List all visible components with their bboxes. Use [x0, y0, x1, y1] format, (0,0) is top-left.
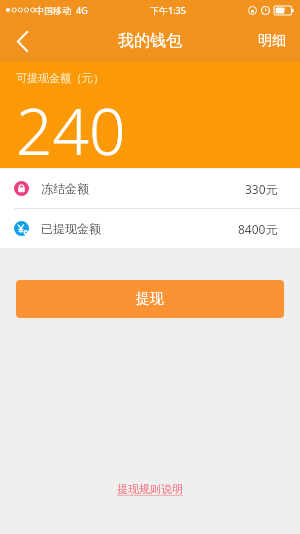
staticText: 明细 [258, 32, 286, 50]
staticText: 240 [16, 87, 126, 168]
staticText: 提现规则说明 [117, 482, 183, 496]
staticText: 下午1:35 [150, 4, 186, 16]
staticText: 可提现金额（元） [16, 71, 104, 85]
staticText: 已提现金额 [41, 221, 101, 236]
staticText: 提现 [136, 290, 164, 308]
button[interactable]: 已提现金额 [0, 209, 300, 248]
staticText: 330元 [245, 181, 278, 197]
button[interactable]: 提现规则说明 [107, 476, 193, 502]
button[interactable]: 明细 [244, 22, 300, 60]
button[interactable]: 冻结金额 [0, 169, 300, 208]
staticText: 中国移动 [35, 5, 71, 16]
button[interactable]: Back [0, 20, 44, 62]
staticText: 4G [76, 4, 88, 16]
button[interactable]: 提现 [16, 280, 284, 318]
staticText: 我的钱包 [118, 31, 182, 51]
staticText: 冻结金额 [41, 181, 89, 196]
staticText: 8400元 [238, 221, 278, 237]
